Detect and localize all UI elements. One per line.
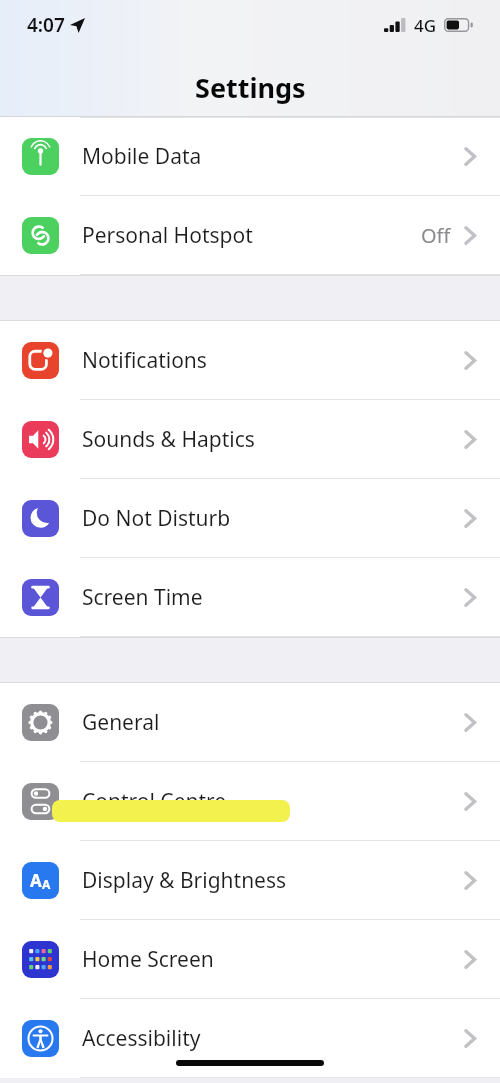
other: Accessibility [22, 1020, 59, 1057]
staticText: Screen Time [82, 583, 203, 612]
button[interactable]: Mobile Data [0, 117, 500, 196]
other: Do Not Disturb [22, 500, 59, 537]
staticText: 4G [414, 14, 437, 37]
staticText: 4:07 [27, 12, 65, 38]
button[interactable]: Home Screen [0, 920, 500, 999]
staticText: A [42, 876, 51, 892]
other: Sounds and Haptics [22, 421, 59, 458]
button[interactable]: Display and Brightness [0, 841, 500, 920]
staticText: Home Screen [82, 945, 214, 974]
staticText: Accessibility [82, 1024, 201, 1053]
other: Mobile Data [22, 138, 59, 175]
other: Personal Hotspot [22, 217, 59, 254]
other: Home Screen [22, 941, 59, 978]
staticText: Display & Brightness [82, 866, 287, 895]
button[interactable]: Control Centre [0, 762, 500, 841]
button[interactable]: Screen Time [0, 558, 500, 637]
button[interactable]: Do Not Disturb [0, 479, 500, 558]
other: Notifications [22, 342, 59, 379]
staticText: Settings [195, 69, 306, 106]
button[interactable]: General [0, 683, 500, 762]
staticText: Notifications [82, 346, 207, 375]
staticText: Off [421, 222, 451, 249]
button[interactable]: Personal Hotspot [0, 196, 500, 275]
other: Screen Time [22, 579, 59, 616]
staticText: Mobile Data [82, 142, 202, 171]
staticText: General [82, 708, 160, 737]
other: Display and Brightness [22, 862, 59, 899]
button[interactable]: Notifications [0, 321, 500, 400]
staticText: Personal Hotspot [82, 221, 253, 250]
staticText: Sounds & Haptics [82, 425, 255, 454]
other: General [22, 704, 59, 741]
staticText: Do Not Disturb [82, 504, 231, 533]
button[interactable]: Accessibility [0, 999, 500, 1078]
staticText: Control Centre [82, 787, 227, 816]
button[interactable]: Sounds and Haptics [0, 400, 500, 479]
other: Control Centre [22, 783, 59, 820]
staticText: A [30, 869, 42, 892]
